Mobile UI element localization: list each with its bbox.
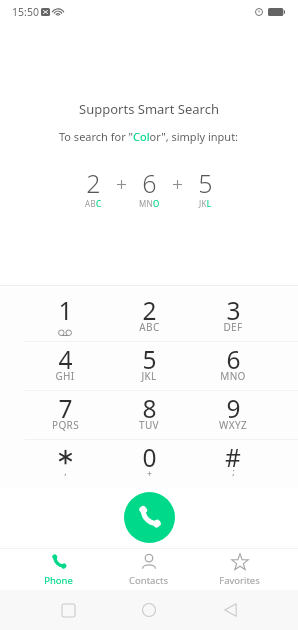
staticText: 5 [142,343,157,376]
staticText: TUV [139,418,159,432]
button[interactable]: 0 [107,440,191,488]
staticText: # [225,441,241,474]
staticText: DEF [223,320,243,334]
staticText: Contacts [129,574,168,587]
button[interactable]: 7 [23,391,107,439]
staticText: 2 [86,166,101,200]
button[interactable]: Recents [48,590,88,630]
button[interactable]: # [191,440,275,488]
staticText: 9 [226,392,241,425]
staticText: 1 [58,294,73,327]
staticText: , [64,465,67,477]
staticText: Supports Smart Search [79,100,219,118]
button[interactable]: Contacts [103,549,194,590]
staticText: 15:50 [12,5,39,19]
button[interactable]: Home [129,590,169,630]
staticText: Phone [44,574,73,587]
button[interactable]: Phone [13,549,103,590]
staticText: 8 [142,392,157,425]
button[interactable]: , [23,440,107,488]
staticText: 4 [58,343,73,376]
button[interactable]: 1 [23,293,107,341]
staticText: GHI [55,369,75,383]
button[interactable]: Call [124,492,175,543]
staticText: 6 [142,166,157,200]
button[interactable]: 4 [23,342,107,390]
staticText: MNO [139,198,160,209]
staticText: 2 [142,294,157,327]
staticText: 6 [226,343,241,376]
staticText: JKL [199,198,212,209]
staticText: 7 [58,392,73,425]
staticText: JKL [141,369,157,383]
button[interactable]: Favorites [194,549,285,590]
staticText: ABC [139,320,160,334]
button[interactable]: 9 [191,391,275,439]
button[interactable]: 2 [107,293,191,341]
staticText: 5 [198,166,213,200]
staticText: To search for "Color", simply input: [59,129,239,144]
staticText: 0 [142,441,157,474]
button[interactable]: 8 [107,391,191,439]
staticText: 3 [226,294,241,327]
staticText: + [147,468,152,480]
staticText: ; [232,465,235,477]
button[interactable]: 6 [191,342,275,390]
button[interactable]: 3 [191,293,275,341]
staticText: PQRS [52,418,79,432]
staticText: WXYZ [219,418,247,432]
staticText: Favorites [219,574,260,587]
button[interactable]: 5 [107,342,191,390]
button[interactable]: Back [210,590,250,630]
staticText: ABC [85,198,102,209]
staticText: MNO [220,369,246,383]
